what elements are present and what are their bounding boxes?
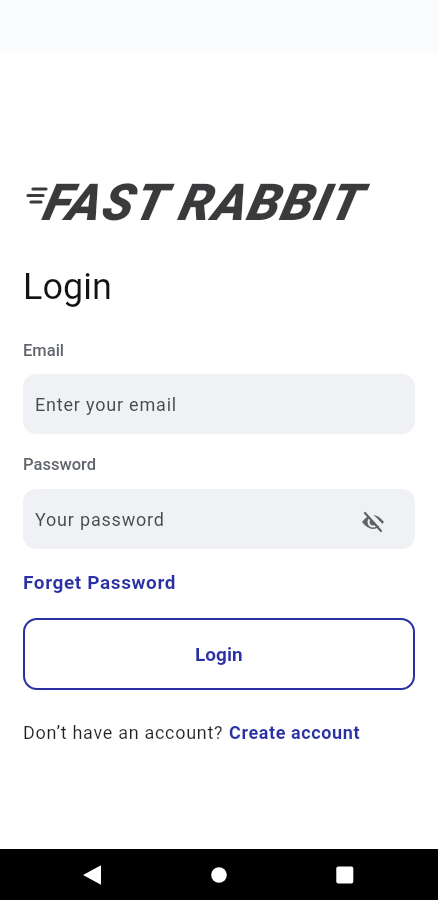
button[interactable]: Forget Password [23,571,177,593]
staticText: Don’t have an account? [23,722,229,743]
button[interactable]: Your password [23,489,415,549]
button[interactable]: Create account [229,722,361,743]
staticText: Email [23,341,65,360]
button[interactable]: Login [23,618,415,690]
staticText: Enter your email [35,394,177,415]
button[interactable]: Enter your email [23,374,415,434]
staticText: Password [23,455,97,474]
staticText: Login [195,643,243,665]
staticText: FAST RABBIT [41,173,360,233]
staticText: Your password [35,509,165,530]
staticText: Login [23,266,112,308]
